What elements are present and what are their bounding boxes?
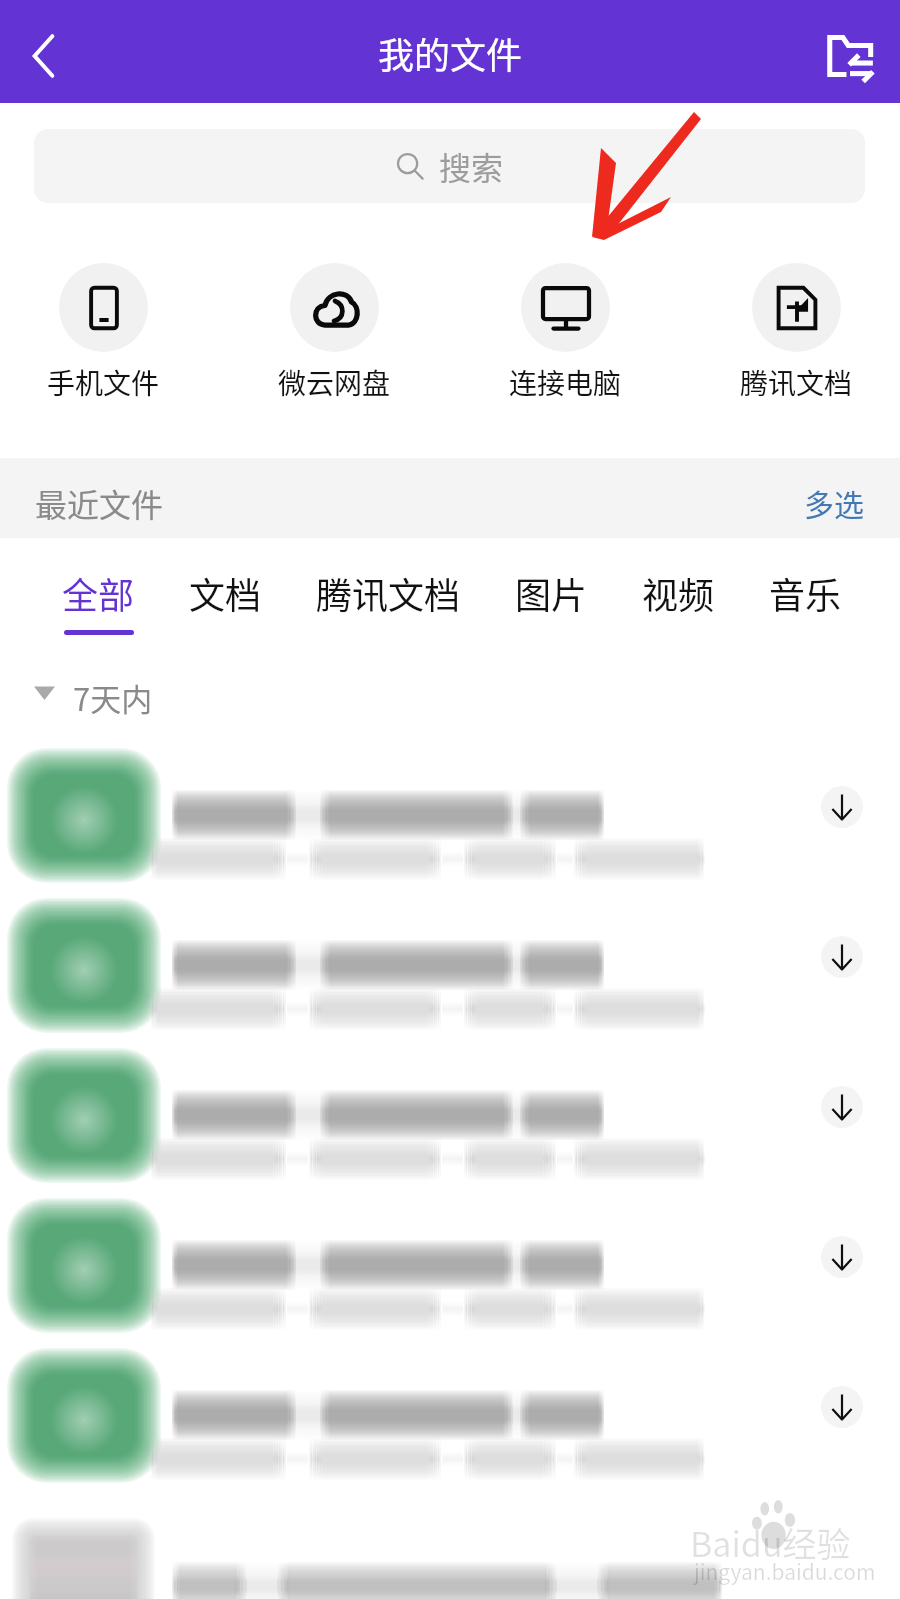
button[interactable]: Download <box>821 936 863 978</box>
staticText: 微云网盘 <box>278 362 391 403</box>
button[interactable]: Download <box>821 1386 863 1428</box>
staticText: 7天内 <box>73 675 153 720</box>
button[interactable]: Download <box>0 736 900 886</box>
staticText: Baidu经验 <box>690 1518 851 1567</box>
staticText: 连接电脑 <box>509 362 622 403</box>
staticText: 文档 <box>189 567 262 619</box>
button[interactable]: 微云网盘 <box>219 263 450 403</box>
staticText: 搜索 <box>439 143 504 189</box>
button[interactable]: Download <box>821 1236 863 1278</box>
button[interactable]: 7天内 <box>34 672 153 718</box>
staticText: 全部 <box>62 567 135 619</box>
staticText: 图片 <box>515 567 588 619</box>
button[interactable]: Download <box>821 1086 863 1128</box>
staticText: 手机文件 <box>47 362 160 403</box>
button[interactable]: Download <box>0 886 900 1036</box>
staticText: 最近文件 <box>35 480 164 526</box>
staticText: 腾讯文档 <box>316 567 461 619</box>
button[interactable]: 手机文件 <box>0 263 219 403</box>
staticText: 我的文件 <box>378 27 523 79</box>
button[interactable]: Back <box>8 16 80 88</box>
button[interactable]: 视频 <box>615 567 742 635</box>
button[interactable]: Download <box>0 1186 900 1336</box>
button[interactable]: 腾讯文档 <box>289 567 488 635</box>
button[interactable]: Transfer files <box>814 16 886 88</box>
staticText: jingyan.baidu.com <box>694 1556 876 1586</box>
button[interactable]: 搜索 <box>34 129 865 203</box>
button[interactable]: 图片 <box>488 567 615 635</box>
button[interactable]: Download <box>821 786 863 828</box>
button[interactable]: 全部 <box>35 567 162 635</box>
button[interactable]: Download <box>0 1036 900 1186</box>
button[interactable]: 多选 <box>798 467 870 530</box>
button[interactable]: 文档 <box>162 567 289 635</box>
staticText: 多选 <box>804 481 864 524</box>
button[interactable] <box>0 1486 900 1599</box>
staticText: 音乐 <box>769 567 842 619</box>
button[interactable]: Download <box>0 1336 900 1486</box>
button[interactable]: 腾讯文档 <box>681 263 900 403</box>
staticText: 视频 <box>642 567 715 619</box>
staticText: 腾讯文档 <box>740 362 853 403</box>
button[interactable]: 连接电脑 <box>450 263 681 403</box>
button[interactable]: 音乐 <box>742 567 869 635</box>
